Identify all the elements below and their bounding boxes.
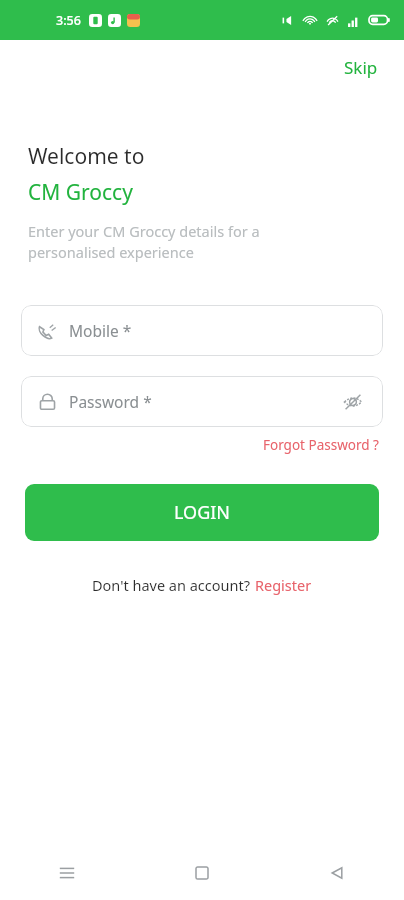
staticText: Forgot Password ?	[263, 436, 379, 454]
button[interactable]: Skip	[340, 54, 382, 81]
button[interactable]: Back	[269, 845, 404, 900]
staticText: LOGIN	[174, 500, 231, 525]
staticText: Register	[255, 575, 312, 595]
staticText: Password *	[69, 391, 152, 412]
button[interactable]: Show password	[339, 388, 367, 416]
staticText: Enter your CM Groccy details for a perso…	[28, 221, 260, 263]
button[interactable]: Password *	[21, 376, 383, 427]
button[interactable]: Mobile *	[21, 305, 383, 356]
staticText: 3:56	[56, 12, 81, 29]
button[interactable]: Register	[254, 573, 313, 597]
button[interactable]: LOGIN	[25, 484, 379, 541]
button[interactable]: Forgot Password ?	[261, 434, 381, 456]
button[interactable]: Home	[134, 845, 269, 900]
staticText: Mobile *	[69, 320, 132, 341]
button[interactable]: Recent apps	[0, 845, 134, 900]
staticText: Skip	[344, 56, 378, 79]
staticText: CM Groccy	[28, 178, 133, 207]
staticText: Welcome to	[28, 142, 145, 171]
staticText: Don't have an account?	[92, 575, 254, 595]
